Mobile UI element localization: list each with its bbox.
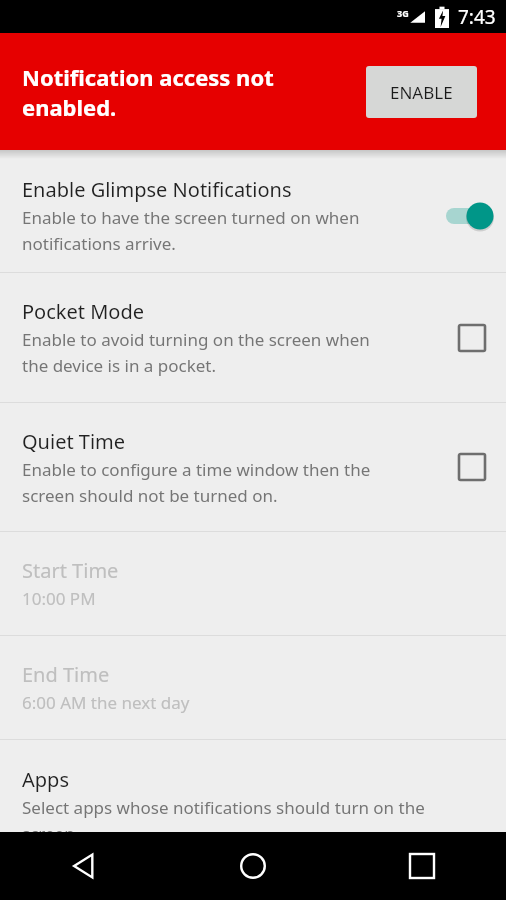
button[interactable]: Checkbox bbox=[452, 447, 492, 487]
button[interactable]: End Time bbox=[0, 636, 506, 739]
staticText: Apps bbox=[22, 766, 69, 793]
button[interactable]: ENABLE bbox=[366, 66, 477, 118]
staticText: 6:00 AM the next day bbox=[22, 691, 190, 714]
staticText: End Time bbox=[22, 661, 110, 688]
staticText: Enable to configure a time window then t… bbox=[22, 458, 371, 507]
staticText: Notification access not enabled. bbox=[22, 62, 274, 122]
button[interactable]: Home bbox=[168, 832, 337, 900]
staticText: Select apps whose notifications should t… bbox=[22, 796, 425, 845]
staticText: Enable Glimpse Notifications bbox=[22, 176, 292, 203]
button[interactable]: Enable Glimpse Notifications toggle bbox=[446, 199, 498, 233]
staticText: 7:43 bbox=[458, 4, 496, 30]
button[interactable]: Enable Glimpse Notifications bbox=[0, 159, 506, 272]
button[interactable]: Checkbox bbox=[452, 318, 492, 358]
button[interactable]: Start Time bbox=[0, 532, 506, 635]
button[interactable]: Back bbox=[0, 832, 168, 900]
button[interactable]: Recent apps bbox=[337, 832, 506, 900]
staticText: Pocket Mode bbox=[22, 298, 144, 325]
staticText: 10:00 PM bbox=[22, 587, 96, 610]
button[interactable]: Pocket Mode bbox=[0, 273, 506, 402]
staticText: Enable to avoid turning on the screen wh… bbox=[22, 328, 370, 377]
staticText: 3G bbox=[397, 7, 409, 19]
staticText: Enable to have the screen turned on when… bbox=[22, 206, 360, 255]
staticText: ENABLE bbox=[390, 81, 453, 104]
button[interactable]: Apps bbox=[0, 740, 506, 870]
staticText: Quiet Time bbox=[22, 428, 126, 455]
button[interactable]: Quiet Time bbox=[0, 403, 506, 531]
staticText: Start Time bbox=[22, 557, 119, 584]
